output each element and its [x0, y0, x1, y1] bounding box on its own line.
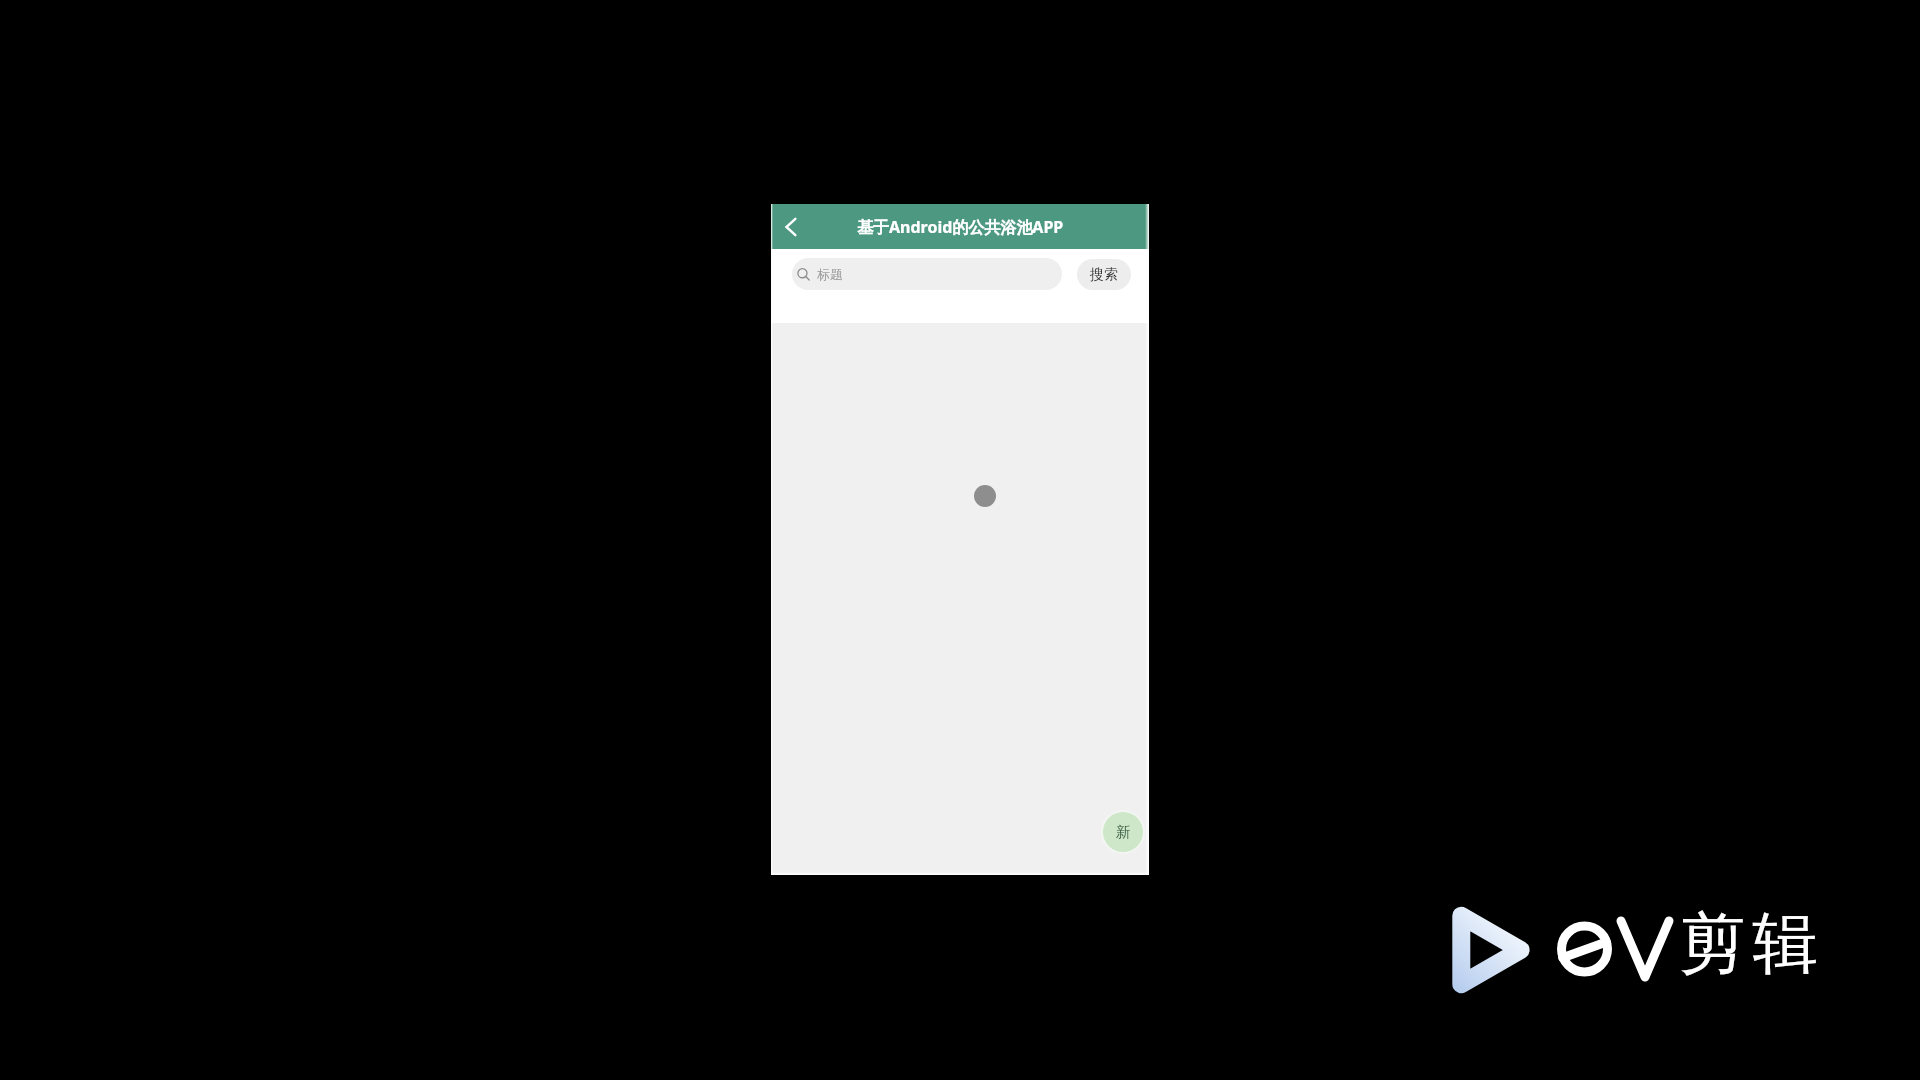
- button[interactable]: 标题: [792, 258, 1062, 290]
- button[interactable]: 新: [1103, 812, 1143, 852]
- staticText: 新: [1116, 823, 1131, 842]
- button[interactable]: 搜索: [1077, 259, 1131, 290]
- button[interactable]: Back: [775, 211, 807, 243]
- staticText: 剪辑: [1676, 902, 1822, 985]
- staticText: 标题: [817, 266, 843, 282]
- staticText: 基于Android的公共浴池APP: [857, 216, 1064, 238]
- staticText: 搜索: [1090, 266, 1118, 284]
